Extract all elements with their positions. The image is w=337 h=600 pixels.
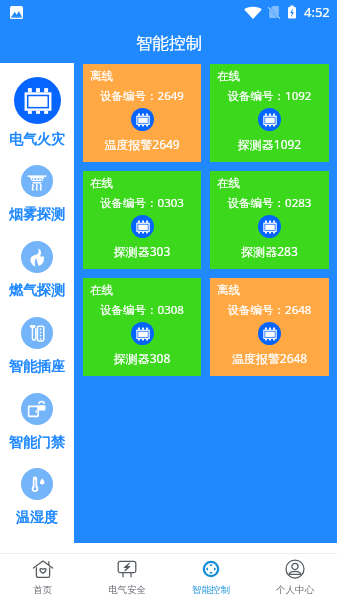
button[interactable]: 在线: [83, 171, 201, 269]
staticText: 在线: [90, 176, 113, 190]
staticText: 个人中心: [276, 584, 314, 596]
staticText: 温湿度: [16, 509, 58, 527]
button[interactable]: 在线: [83, 278, 201, 376]
button[interactable]: 离线: [210, 278, 329, 376]
staticText: 离线: [217, 283, 240, 297]
staticText: 温度报警2648: [217, 350, 322, 366]
button[interactable]: 电气火灾: [0, 77, 74, 149]
button[interactable]: 智能门禁: [0, 393, 74, 452]
staticText: 电气火灾: [9, 131, 65, 149]
button[interactable]: 个人中心: [253, 554, 337, 600]
staticText: 设备编号：0283: [217, 195, 322, 211]
button[interactable]: 首页: [0, 554, 85, 600]
button[interactable]: 电气安全: [85, 554, 169, 600]
staticText: 在线: [90, 283, 113, 297]
staticText: 智能门禁: [9, 434, 65, 452]
staticText: 离线: [90, 69, 113, 83]
button[interactable]: 离线: [83, 64, 201, 162]
staticText: 烟雾探测: [9, 206, 65, 224]
button[interactable]: 燃气探测: [0, 241, 74, 300]
staticText: 智能控制: [192, 584, 230, 596]
staticText: 设备编号：0308: [90, 302, 194, 318]
staticText: 设备编号：0303: [90, 195, 194, 211]
staticText: 智能控制: [136, 33, 202, 54]
button[interactable]: 烟雾探测: [0, 165, 74, 224]
button[interactable]: 在线: [210, 171, 329, 269]
staticText: 在线: [217, 176, 240, 190]
staticText: 4:52: [304, 3, 330, 21]
staticText: 探测器1092: [217, 136, 322, 152]
staticText: 电气安全: [108, 584, 146, 596]
staticText: 设备编号：2648: [217, 302, 322, 318]
staticText: 设备编号：2649: [90, 88, 194, 104]
button[interactable]: 在线: [210, 64, 329, 162]
staticText: 在线: [217, 69, 240, 83]
staticText: 智能插座: [9, 358, 65, 376]
button[interactable]: 智能控制: [169, 554, 253, 600]
button[interactable]: 智能插座: [0, 317, 74, 376]
staticText: 首页: [33, 584, 52, 596]
staticText: 燃气探测: [9, 282, 65, 300]
staticText: 设备编号：1092: [217, 88, 322, 104]
staticText: 探测器308: [90, 350, 194, 366]
staticText: 探测器283: [217, 243, 322, 259]
staticText: 探测器303: [90, 243, 194, 259]
staticText: 温度报警2649: [90, 136, 194, 152]
button[interactable]: 温湿度: [0, 468, 74, 527]
